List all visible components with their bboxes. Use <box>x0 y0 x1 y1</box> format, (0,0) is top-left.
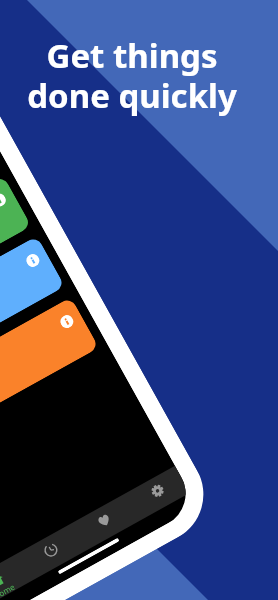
button[interactable]: History <box>18 524 85 580</box>
button[interactable]: Calendars <box>0 236 65 397</box>
button[interactable]: Home <box>0 554 32 600</box>
button[interactable]: Settings <box>0 297 99 458</box>
button[interactable]: Alarms <box>0 175 32 336</box>
staticText: Home <box>0 581 17 600</box>
staticText: Get things done quickly <box>0 33 271 117</box>
button[interactable]: Settings <box>124 466 190 521</box>
button[interactable]: Favorites <box>71 494 138 551</box>
